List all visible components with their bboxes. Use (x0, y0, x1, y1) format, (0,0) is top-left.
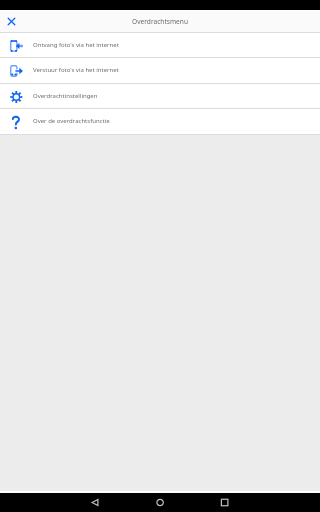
staticText: Overdrachtinstellingen (33, 92, 98, 100)
staticText: Overdrachtsmenu (132, 17, 188, 26)
staticText: Over de overdrachtsfunctie (33, 117, 110, 125)
button[interactable]: Over de overdrachtsfunctie (0, 109, 320, 134)
staticText: Verstuur foto's via het internet (33, 66, 119, 74)
staticText: Ontvang foto's via het internet (33, 41, 119, 49)
button[interactable]: Overdrachtinstellingen (0, 84, 320, 109)
button[interactable]: Verstuur foto's via het internet (0, 58, 320, 83)
button[interactable]: Ontvang foto's via het internet (0, 33, 320, 58)
button[interactable]: Close (5, 15, 18, 28)
